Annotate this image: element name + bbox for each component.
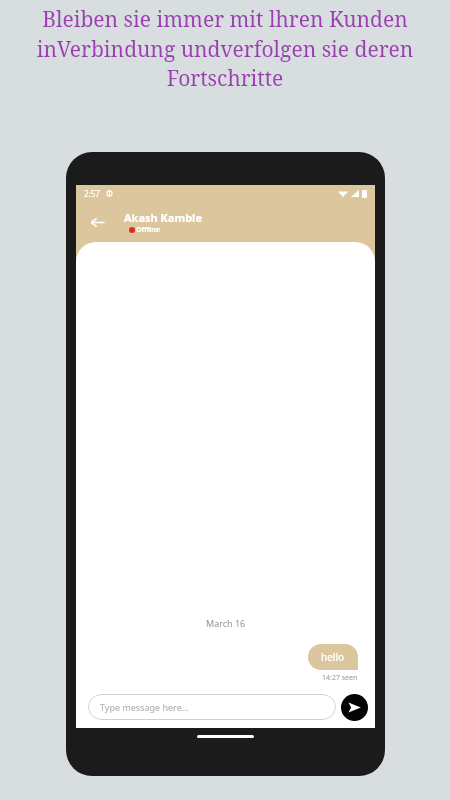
button[interactable]: Send [341,694,368,721]
button[interactable]: Akash Kamble [124,210,202,235]
staticText: Bleiben sie immer mit lhren Kunden inVer… [3,5,447,92]
button[interactable]: Back [83,208,111,236]
staticText: 14:27 seen [322,673,358,683]
staticText: hello [321,650,345,664]
staticText: March 16 [206,617,246,629]
staticText: Type message here... [100,701,189,713]
button[interactable]: hello [308,644,358,670]
staticText: 2:57 [84,188,100,199]
staticText: Akash Kamble [124,210,202,225]
staticText: Offline [136,225,160,235]
button[interactable]: Type message here... [88,694,336,720]
